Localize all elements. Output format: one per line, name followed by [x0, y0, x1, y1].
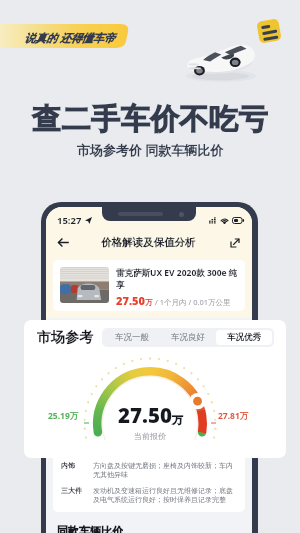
- staticText: 车况优秀: [227, 332, 261, 343]
- staticText: 内饰: [61, 461, 85, 470]
- staticText: 雷克萨斯UX EV 2020款 300e 纯享: [116, 267, 238, 290]
- staticText: 27.50: [118, 401, 172, 429]
- button[interactable]: 雷克萨斯UX EV 2020款 300e 纯享: [53, 260, 245, 311]
- staticText: 车况一般: [115, 332, 149, 343]
- staticText: 查二手车价不吃亏: [0, 101, 300, 138]
- staticText: 车况良好: [171, 332, 205, 343]
- staticText: 三大件: [61, 486, 85, 495]
- staticText: 15:27: [57, 214, 82, 227]
- staticText: / 1个月内 / 0.01万公里: [153, 297, 231, 307]
- staticText: 方向盘及按键无磨损；座椅及内饰较新；车内无其他异味: [93, 461, 238, 480]
- button[interactable]: 车况良好: [160, 330, 216, 345]
- staticText: 说真的 还得懂车帝: [24, 30, 115, 45]
- staticText: 当前报价: [134, 431, 166, 441]
- staticText: 万: [172, 413, 183, 427]
- staticText: 25.19万: [48, 410, 79, 422]
- staticText: 27.81万: [218, 410, 249, 422]
- staticText: 27.50: [116, 293, 145, 308]
- staticText: 市场参考价 同款车辆比价: [0, 141, 300, 159]
- button[interactable]: 分享: [226, 234, 243, 251]
- staticText: 市场参考: [37, 329, 93, 347]
- staticText: 发动机及变速箱运行良好且无维修记录；底盘及电气系统运行良好；按时保养且记录完整: [93, 486, 238, 505]
- staticText: 同款车辆比价: [57, 524, 123, 533]
- button[interactable]: 返回: [55, 234, 72, 251]
- button[interactable]: 车况优秀: [216, 330, 272, 345]
- button[interactable]: 车况一般: [104, 330, 160, 345]
- staticText: 价格解读及保值分析: [101, 236, 196, 249]
- staticText: 万: [145, 298, 153, 307]
